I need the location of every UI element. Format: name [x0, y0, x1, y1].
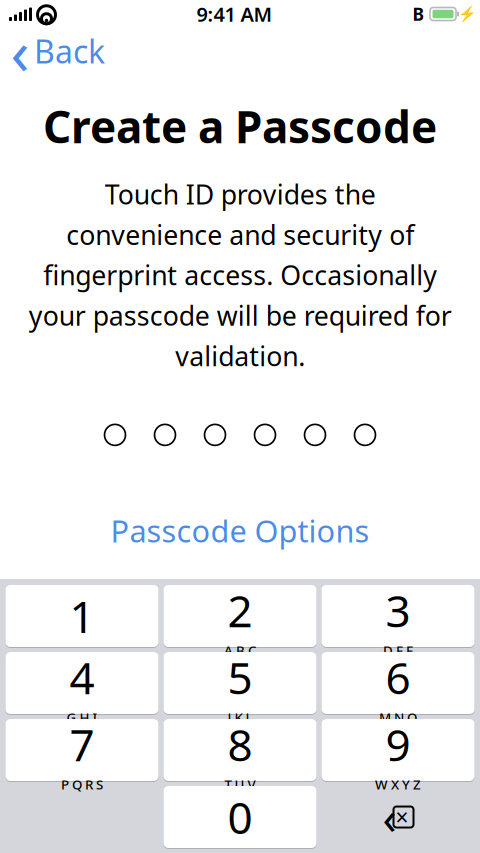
button[interactable]: Delete [321, 786, 474, 848]
staticText: 1 [69, 587, 94, 645]
staticText: ‹ [10, 10, 29, 92]
staticText: × [395, 802, 408, 832]
staticText: Touch ID provides the convenience and se… [28, 176, 451, 373]
staticText: G H I [66, 708, 97, 726]
button[interactable]: 7 [5, 719, 158, 781]
staticText: 8 [227, 715, 252, 773]
staticText: J K L [227, 708, 252, 726]
button[interactable]: 0 [163, 786, 316, 848]
staticText: 9 [385, 715, 410, 773]
staticText: 0 [227, 788, 252, 846]
button[interactable]: Passcode Options [92, 500, 387, 561]
staticText: D E F [383, 641, 413, 659]
staticText: 6 [385, 648, 410, 706]
staticText: P Q R S [61, 775, 103, 793]
button[interactable]: 9 [321, 719, 474, 781]
button[interactable]: 3 [321, 585, 474, 647]
staticText: M N O [379, 708, 417, 726]
staticText: 4 [69, 648, 94, 706]
staticText: Passcode Options [110, 510, 369, 551]
staticText: W X Y Z [375, 775, 421, 793]
staticText: 3 [385, 581, 410, 639]
staticText: 7 [69, 715, 94, 773]
button[interactable]: ‹ [0, 24, 115, 78]
staticText: 5 [227, 648, 252, 706]
staticText: A B C [224, 641, 256, 659]
button[interactable]: 6 [321, 652, 474, 714]
staticText: ‹ [382, 787, 396, 847]
staticText: B [412, 2, 424, 25]
button[interactable]: 2 [163, 585, 316, 647]
staticText: T U V [224, 775, 255, 793]
staticText: Back [34, 30, 105, 72]
staticText: 2 [227, 581, 252, 639]
button[interactable]: 5 [163, 652, 316, 714]
staticText: ⚡ [457, 6, 475, 22]
button[interactable]: 8 [163, 719, 316, 781]
button[interactable]: 1 [5, 585, 158, 647]
staticText: 9:41 AM [196, 1, 272, 27]
button[interactable]: 4 [5, 652, 158, 714]
staticText: Create a Passcode [43, 97, 437, 155]
